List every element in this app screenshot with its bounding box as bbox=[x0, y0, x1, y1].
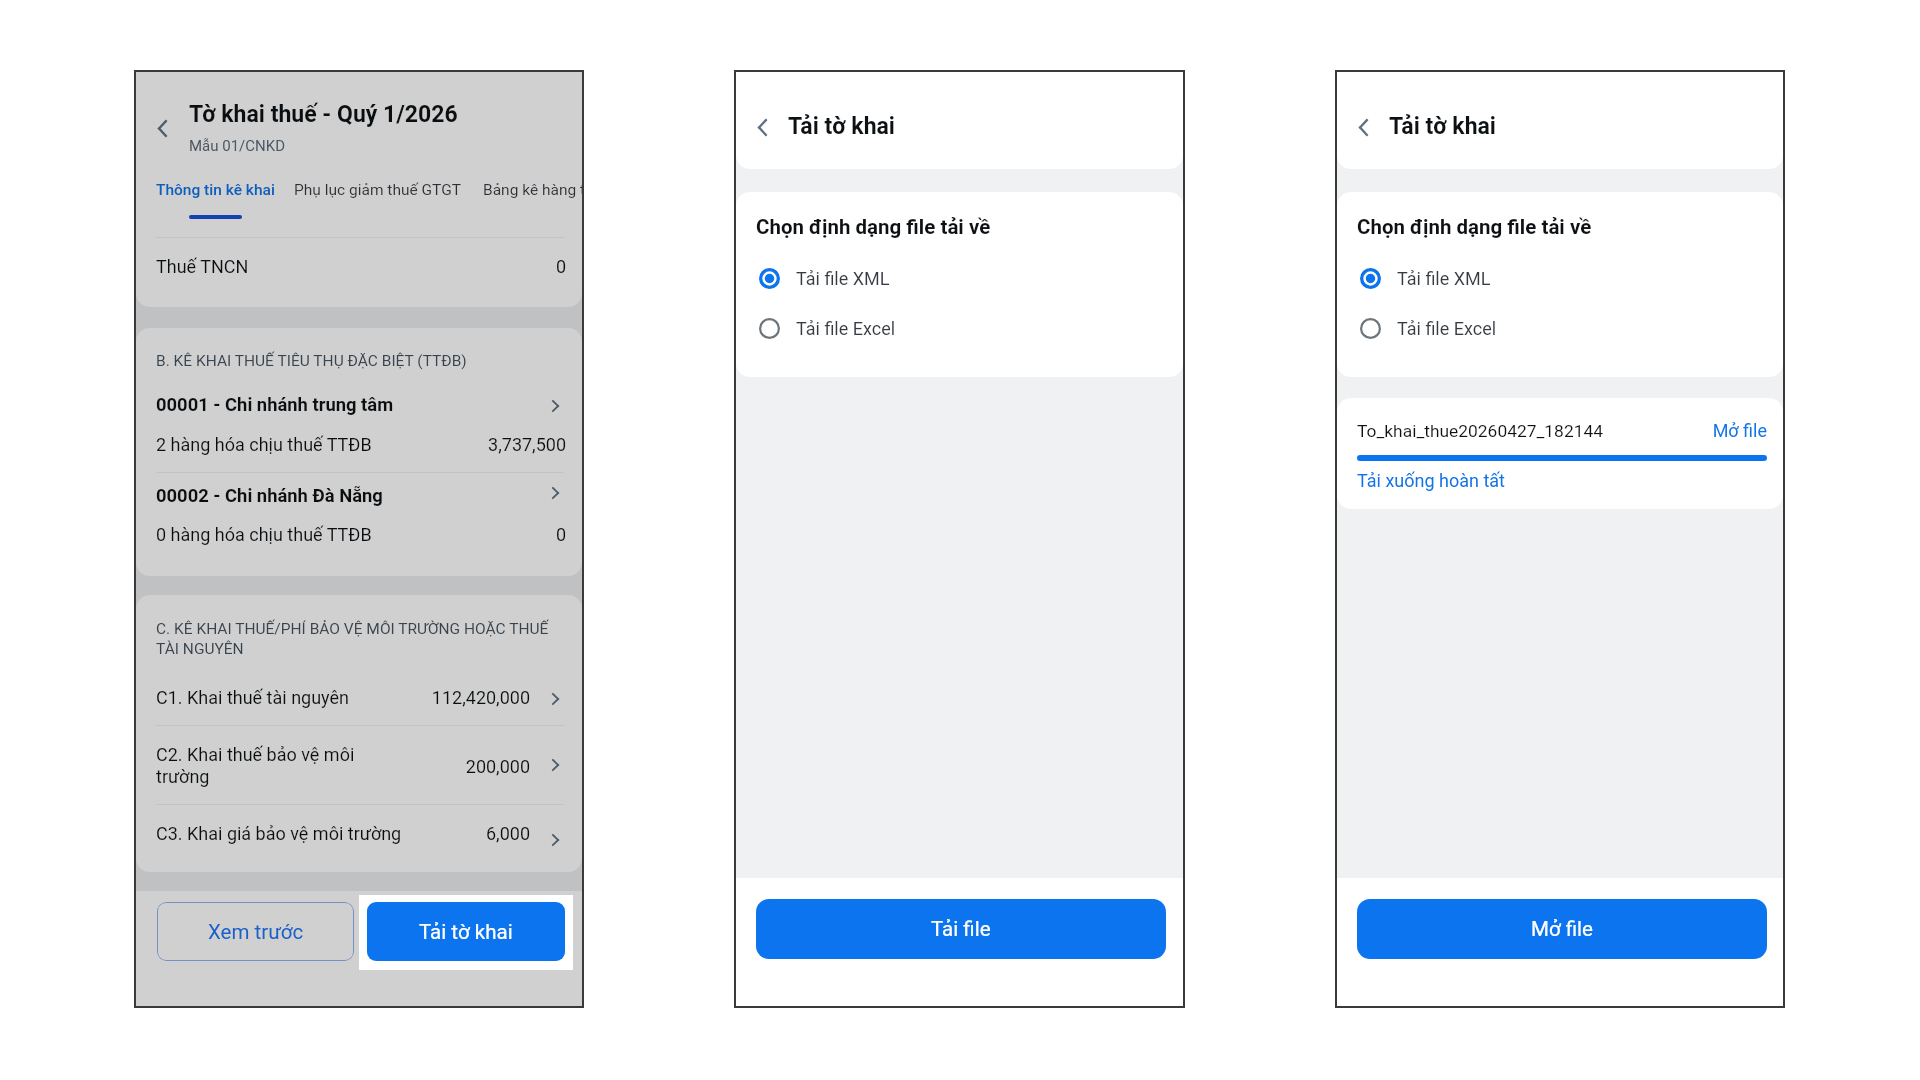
staticText: Chọn định dạng file tải về bbox=[756, 215, 991, 239]
button[interactable]: Tải file XML bbox=[1337, 258, 1783, 298]
button[interactable]: Thông tin kê khai bbox=[152, 171, 278, 219]
staticText: 112,420,000 bbox=[136, 687, 530, 708]
staticText: Tải file XML bbox=[1397, 268, 1491, 289]
button[interactable]: Tải file Excel bbox=[736, 308, 1183, 348]
button[interactable]: C1. Khai thuế tài nguyên bbox=[136, 683, 582, 725]
staticText: 6,000 bbox=[136, 823, 530, 844]
button[interactable]: Xem trước bbox=[157, 902, 354, 961]
button[interactable]: Bảng kê hàng tồn kho bbox=[479, 171, 582, 219]
staticText: Tải tờ khai bbox=[419, 920, 513, 944]
staticText: C3. Khai giá bảo vệ môi trường bbox=[156, 823, 402, 844]
button[interactable]: Tải tờ khai bbox=[367, 902, 565, 961]
staticText: 0 bbox=[136, 256, 566, 277]
staticText: Tải xuống hoàn tất bbox=[1357, 470, 1505, 491]
button[interactable]: Tải file Excel bbox=[1337, 308, 1783, 348]
staticText: 00001 - Chi nhánh trung tâm bbox=[156, 394, 394, 416]
staticText: 00002 - Chi nhánh Đà Nẵng bbox=[156, 485, 383, 507]
staticText: 2 hàng hóa chịu thuế TTĐB bbox=[156, 434, 372, 455]
staticText: 3,737,500 bbox=[136, 434, 566, 455]
button[interactable]: Back bbox=[147, 110, 177, 146]
staticText: Tải tờ khai bbox=[1389, 113, 1496, 140]
staticText: Tải file Excel bbox=[796, 318, 896, 339]
staticText: C. KÊ KHAI THUẾ/PHÍ BẢO VỆ MÔI TRƯỜNG HO… bbox=[156, 620, 549, 657]
button[interactable]: Tải file bbox=[756, 899, 1166, 959]
staticText: C1. Khai thuế tài nguyên bbox=[156, 687, 349, 708]
button[interactable]: Back bbox=[1348, 109, 1378, 145]
staticText: 0 bbox=[136, 524, 566, 545]
staticText: Tải file Excel bbox=[1397, 318, 1497, 339]
staticText: To_khai_thue20260427_182144 bbox=[1357, 421, 1603, 441]
staticText: Tải tờ khai bbox=[788, 113, 895, 140]
staticText: Phụ lục giảm thuế GTGT bbox=[294, 181, 461, 199]
staticText: Thông tin kê khai bbox=[156, 181, 275, 199]
staticText: 0 hàng hóa chịu thuế TTĐB bbox=[156, 524, 372, 545]
button[interactable]: Tải file XML bbox=[736, 258, 1183, 298]
button[interactable]: Phụ lục giảm thuế GTGT bbox=[290, 171, 464, 219]
staticText: Mở file bbox=[1531, 917, 1593, 941]
staticText: Chọn định dạng file tải về bbox=[1357, 215, 1592, 239]
staticText: B. KÊ KHAI THUẾ TIÊU THỤ ĐẶC BIỆT (TTĐB) bbox=[156, 352, 467, 370]
button[interactable]: C3. Khai giá bảo vệ môi trường bbox=[136, 819, 582, 861]
staticText: Xem trước bbox=[208, 920, 304, 944]
button[interactable]: Mở file bbox=[1357, 899, 1767, 959]
button[interactable]: 00001 - Chi nhánh trung tâm bbox=[136, 386, 582, 466]
button[interactable]: Thuế TNCN bbox=[136, 253, 582, 293]
staticText: Tờ khai thuế - Quý 1/2026 bbox=[189, 101, 458, 128]
button[interactable]: C2. Khai thuế bảo vệ môi trường bbox=[136, 726, 582, 803]
staticText: Thuế TNCN bbox=[156, 256, 249, 277]
staticText: 200,000 bbox=[136, 756, 530, 777]
staticText: Tải file XML bbox=[796, 268, 890, 289]
staticText: Tải file bbox=[931, 917, 991, 941]
staticText: Mẫu 01/CNKD bbox=[189, 137, 286, 155]
staticText: Bảng kê hàng t bbox=[483, 181, 582, 199]
staticText: C2. Khai thuế bảo vệ môi trường bbox=[156, 744, 364, 788]
button[interactable]: Back bbox=[747, 109, 777, 145]
button[interactable]: 00002 - Chi nhánh Đà Nẵng bbox=[136, 476, 582, 556]
